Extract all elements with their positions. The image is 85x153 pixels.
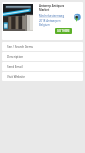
staticText: Visit Website: [7, 75, 25, 79]
other: Map location: [73, 14, 81, 22]
button[interactable]: Antwerp Antiques Market: [2, 2, 83, 40]
button[interactable]: GO THERE: [55, 28, 72, 34]
staticText: Mechelsesteenweg: [39, 14, 65, 18]
staticText: Antwerp Antiques Market: [39, 4, 67, 12]
staticText: Send Email: [7, 65, 23, 69]
staticText: GO THERE: [57, 29, 70, 33]
button[interactable]: Visit Website: [2, 72, 83, 81]
staticText: Description: [7, 55, 24, 59]
button[interactable]: Send Email: [2, 62, 83, 71]
staticText: 2018 Antwerpen Belgium: [39, 19, 67, 27]
button[interactable]: Description: [2, 52, 83, 61]
staticText: See / Search Items: [7, 45, 34, 49]
button[interactable]: See / Search Items: [2, 42, 83, 51]
